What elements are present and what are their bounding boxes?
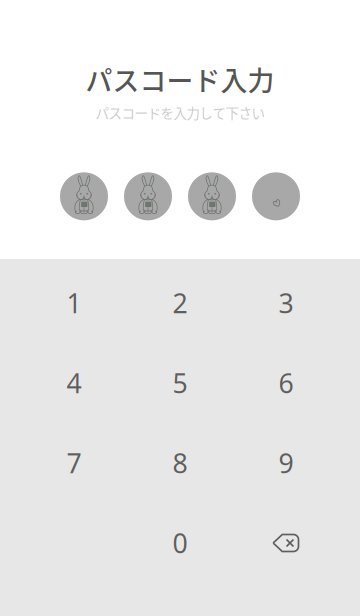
button[interactable]: 3 [233, 263, 339, 343]
button[interactable]: Delete [233, 503, 339, 583]
staticText: 1 [66, 285, 81, 321]
button[interactable]: 2 [127, 263, 233, 343]
staticText: パスコードを入力して下さい [95, 103, 264, 122]
button[interactable]: 4 [21, 343, 127, 423]
staticText: 9 [278, 445, 293, 481]
staticText: 7 [66, 445, 81, 481]
staticText: 3 [278, 285, 293, 321]
button[interactable]: 8 [127, 423, 233, 503]
button[interactable]: 5 [127, 343, 233, 423]
button[interactable]: 7 [21, 423, 127, 503]
staticText: パスコード入力 [85, 60, 274, 99]
staticText: 6 [278, 365, 293, 401]
staticText: 8 [172, 445, 187, 481]
button[interactable]: 0 [127, 503, 233, 583]
staticText: 5 [172, 365, 187, 401]
staticText: 2 [172, 285, 187, 321]
button[interactable]: 6 [233, 343, 339, 423]
button[interactable]: 1 [21, 263, 127, 343]
staticText: 0 [172, 525, 187, 561]
staticText: 4 [66, 365, 81, 401]
button[interactable]: 9 [233, 423, 339, 503]
